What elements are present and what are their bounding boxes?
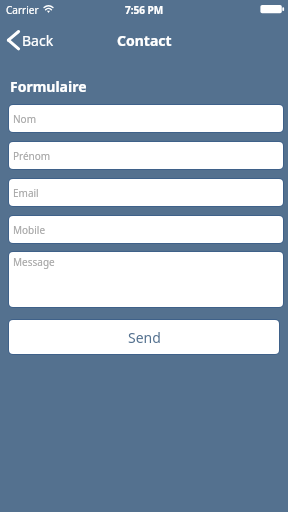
staticText: Nom	[13, 112, 36, 126]
staticText: Prénom	[13, 149, 51, 163]
staticText: Back	[22, 31, 54, 50]
staticText: 7:56 PM	[125, 3, 164, 17]
staticText: Mobile	[13, 223, 46, 237]
staticText: Send	[128, 328, 161, 347]
button[interactable]: Message	[8, 251, 284, 308]
button[interactable]: Prénom	[8, 141, 284, 170]
button[interactable]: Send	[8, 319, 280, 355]
button[interactable]: Back	[4, 26, 56, 54]
staticText: Email	[13, 186, 39, 200]
staticText: Carrier	[6, 3, 39, 17]
button[interactable]: Mobile	[8, 215, 284, 244]
button[interactable]: Nom	[8, 104, 284, 133]
staticText: Formulaire	[10, 77, 87, 96]
staticText: Contact	[117, 31, 172, 50]
staticText: Message	[13, 255, 55, 269]
button[interactable]: Email	[8, 178, 284, 207]
